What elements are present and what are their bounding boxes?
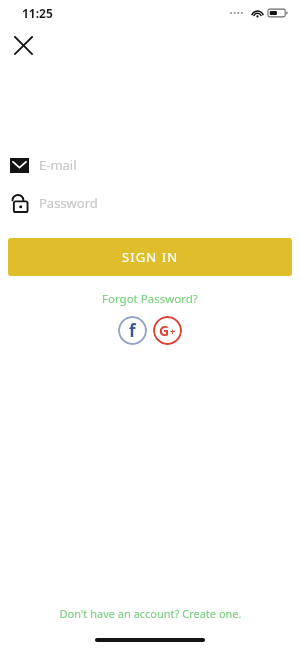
staticText: E-mail (39, 156, 77, 174)
button[interactable]: Close (6, 28, 40, 62)
button[interactable]: E-mail (0, 146, 300, 184)
button[interactable]: Password (0, 184, 300, 222)
staticText: Don't have an account? Create one. (59, 606, 242, 621)
staticText: Forgot Password? (102, 291, 198, 307)
staticText: Password (39, 194, 98, 212)
button[interactable]: SIGN IN (8, 238, 292, 276)
staticText: f (129, 319, 136, 342)
button[interactable]: Sign in with Google Plus (153, 316, 182, 345)
staticText: 11:25 (22, 5, 53, 21)
button[interactable]: Forgot Password? (94, 288, 206, 310)
staticText: SIGN IN (122, 248, 179, 266)
staticText: G (159, 321, 170, 340)
staticText: + (170, 325, 176, 337)
button[interactable]: Sign in with Facebook (118, 316, 147, 345)
button[interactable]: Don't have an account? Create one. (49, 602, 252, 625)
